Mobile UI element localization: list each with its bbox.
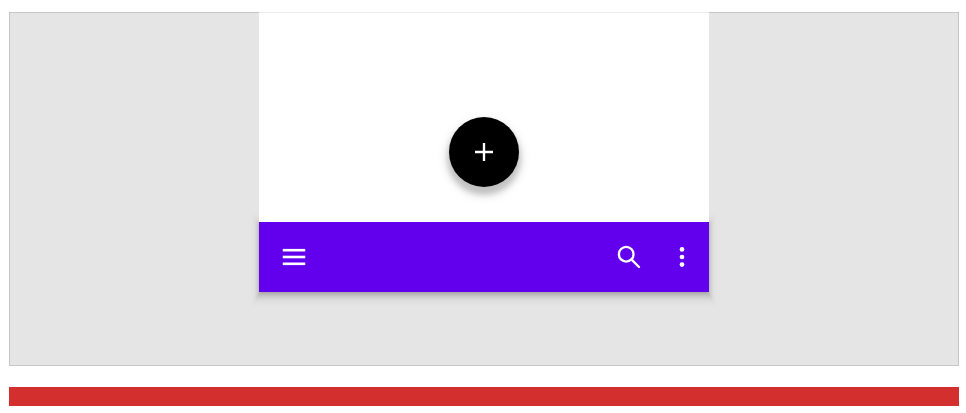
button[interactable]: Menu	[270, 233, 318, 281]
button[interactable]: Search	[605, 233, 653, 281]
button[interactable]: More options	[658, 233, 706, 281]
button[interactable]: Add	[449, 117, 519, 187]
